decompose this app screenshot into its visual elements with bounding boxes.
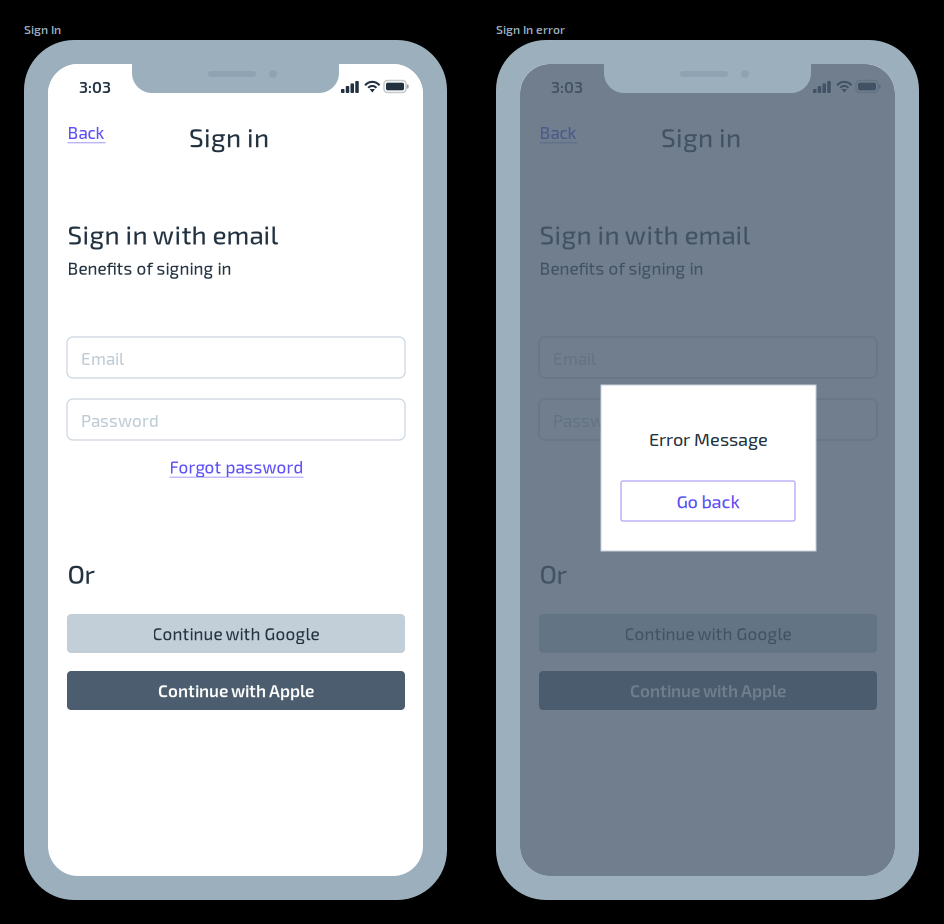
staticText: Sign in xyxy=(661,121,741,153)
staticText: Or xyxy=(539,558,567,589)
staticText: Sign In xyxy=(24,22,61,36)
staticText: Sign in with email xyxy=(539,219,750,250)
button[interactable]: Back xyxy=(67,122,105,146)
button[interactable]: Back xyxy=(539,122,577,146)
staticText: Email xyxy=(553,348,596,368)
staticText: Password xyxy=(81,410,159,430)
staticText: Sign in with email xyxy=(67,219,278,250)
staticText: Password xyxy=(553,410,631,430)
button[interactable]: Continue with Apple xyxy=(539,671,877,710)
staticText: Email xyxy=(81,348,124,368)
button[interactable]: Go back xyxy=(621,481,795,521)
button[interactable]: Continue with Google xyxy=(539,614,877,653)
button[interactable]: Continue with Apple xyxy=(67,671,405,710)
staticText: Sign In error xyxy=(496,22,565,36)
staticText: Sign in xyxy=(189,121,269,153)
staticText: Continue with Google xyxy=(152,623,319,644)
button[interactable]: Forgot password xyxy=(169,456,303,480)
staticText: Forgot password xyxy=(169,456,303,477)
staticText: Benefits of signing in xyxy=(539,258,703,278)
staticText: Back xyxy=(539,122,576,142)
staticText: 3:03 xyxy=(551,77,583,96)
staticText: Continue with Google xyxy=(624,623,791,644)
staticText: Or xyxy=(67,558,95,589)
staticText: Back xyxy=(67,122,104,142)
staticText: Continue with Apple xyxy=(630,680,786,701)
staticText: Continue with Apple xyxy=(158,680,314,701)
staticText: Error Message xyxy=(649,428,768,450)
staticText: 3:03 xyxy=(79,77,111,96)
staticText: Benefits of signing in xyxy=(67,258,231,278)
button[interactable]: Continue with Google xyxy=(67,614,405,653)
staticText: Go back xyxy=(676,490,739,512)
